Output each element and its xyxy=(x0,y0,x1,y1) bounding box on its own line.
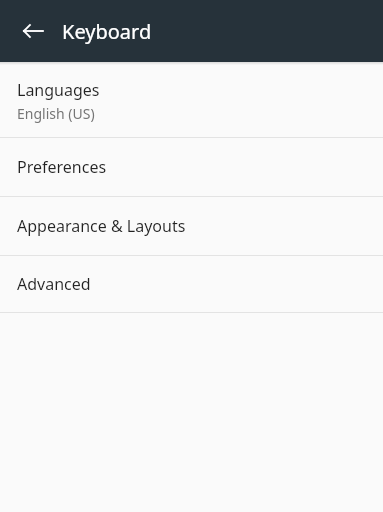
staticText: Advanced xyxy=(17,273,91,295)
staticText: Keyboard xyxy=(62,18,152,45)
button[interactable]: Languages xyxy=(0,65,383,137)
button[interactable]: Appearance & Layouts xyxy=(0,197,383,255)
staticText: Appearance & Layouts xyxy=(17,215,186,237)
button[interactable]: Back xyxy=(13,11,53,51)
staticText: Preferences xyxy=(17,156,107,178)
staticText: Languages xyxy=(17,79,100,101)
button[interactable]: Advanced xyxy=(0,256,383,312)
staticText: English (US) xyxy=(17,104,95,123)
button[interactable]: Preferences xyxy=(0,138,383,196)
